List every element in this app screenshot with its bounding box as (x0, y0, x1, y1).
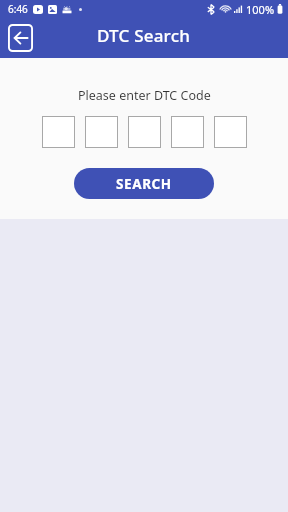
button[interactable]: SEARCH (74, 168, 214, 199)
button[interactable] (171, 116, 204, 148)
button[interactable] (42, 116, 75, 148)
staticText: 6:46 (8, 2, 28, 16)
button[interactable] (128, 116, 161, 148)
staticText: 100% (246, 2, 275, 17)
button[interactable]: Back (8, 24, 33, 52)
button[interactable] (214, 116, 247, 148)
staticText: SEARCH (116, 175, 172, 193)
staticText: DTC Search (97, 24, 191, 47)
staticText: Please enter DTC Code (78, 87, 211, 104)
button[interactable] (85, 116, 118, 148)
